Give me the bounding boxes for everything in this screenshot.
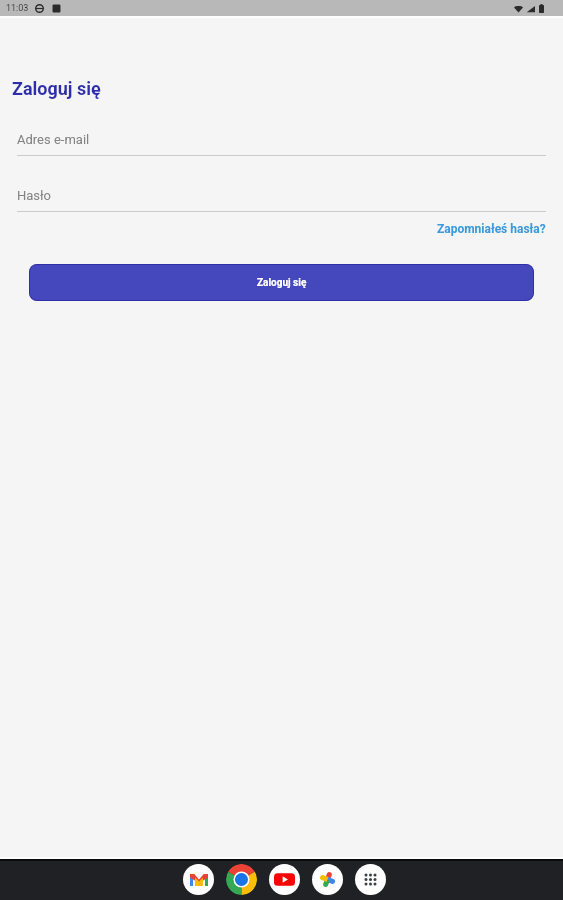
button[interactable]: Gmail [183,864,214,895]
staticText: Hasło [17,188,51,203]
staticText: Zaloguj się [12,78,101,99]
staticText: 11:03 [6,3,29,14]
button[interactable]: Google Photos [312,864,343,895]
button[interactable]: Zaloguj się [29,264,534,301]
staticText: Adres e-mail [17,132,90,147]
staticText: Zaloguj się [257,277,307,289]
button[interactable]: Hasło [0,188,563,212]
button[interactable]: Adres e-mail [0,132,563,156]
button[interactable]: Zapomniałeś hasła? [420,220,563,238]
button[interactable]: Chrome [226,864,257,895]
button[interactable]: All apps [355,864,386,895]
staticText: Zapomniałeś hasła? [437,222,546,236]
button[interactable]: YouTube [269,864,300,895]
